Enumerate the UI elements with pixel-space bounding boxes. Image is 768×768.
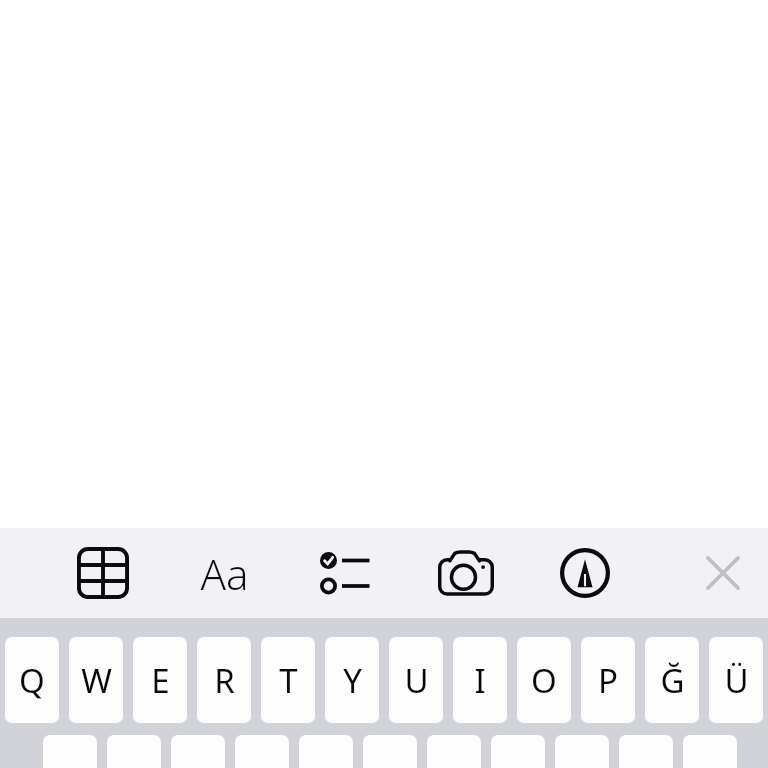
button[interactable] — [107, 735, 161, 768]
staticText: U — [404, 658, 429, 703]
staticText: Ğ — [660, 658, 685, 703]
button[interactable] — [619, 735, 673, 768]
button[interactable]: R — [197, 637, 251, 723]
button[interactable] — [491, 735, 545, 768]
button[interactable]: Ü — [709, 637, 763, 723]
button[interactable] — [683, 735, 737, 768]
button[interactable]: W — [69, 637, 123, 723]
button[interactable] — [43, 735, 97, 768]
button[interactable]: Markup — [546, 534, 624, 612]
button[interactable]: I — [453, 637, 507, 723]
button[interactable]: Text formatting — [185, 534, 263, 612]
staticText: Ü — [724, 658, 749, 703]
button[interactable]: T — [261, 637, 315, 723]
button[interactable] — [235, 735, 289, 768]
button[interactable]: P — [581, 637, 635, 723]
button[interactable]: O — [517, 637, 571, 723]
staticText: P — [598, 658, 618, 703]
staticText: Y — [343, 658, 362, 703]
button[interactable]: Camera — [427, 534, 505, 612]
button[interactable] — [171, 735, 225, 768]
button[interactable] — [299, 735, 353, 768]
button[interactable]: Hide keyboard — [684, 534, 762, 612]
button[interactable] — [363, 735, 417, 768]
staticText: Aa — [200, 545, 249, 602]
button[interactable]: U — [389, 637, 443, 723]
button[interactable] — [555, 735, 609, 768]
staticText: I — [474, 658, 486, 703]
staticText: E — [151, 658, 170, 703]
button[interactable] — [427, 735, 481, 768]
staticText: O — [531, 658, 557, 703]
button[interactable]: Checklist — [306, 534, 384, 612]
staticText: Q — [19, 658, 45, 703]
button[interactable]: Y — [325, 637, 379, 723]
button[interactable]: Ğ — [645, 637, 699, 723]
button[interactable]: E — [133, 637, 187, 723]
staticText: W — [81, 658, 112, 703]
staticText: T — [279, 658, 298, 703]
button[interactable]: Insert table — [64, 534, 142, 612]
button[interactable]: Q — [5, 637, 59, 723]
staticText: R — [214, 658, 235, 703]
